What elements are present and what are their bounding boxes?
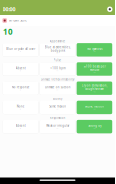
staticText: Absent [16,124,26,127]
staticText: 0 [20,108,21,110]
button[interactable]: Absent [3,120,38,133]
staticText: Absent [16,66,26,70]
button[interactable]: ≥100 beats per minute [77,62,112,76]
button[interactable]: Absent [3,62,38,76]
button[interactable]: No cyanosis [77,43,112,56]
staticText: Grimace (reflex irritability) [40,78,74,81]
staticText: APGAR Score [9,19,27,22]
staticText: <100 bpm [50,66,65,70]
staticText: Grimace on suction [44,85,70,89]
staticText: +1 [56,127,58,129]
staticText: 0 [20,70,21,72]
staticText: +1 [56,70,58,72]
staticText: +2 [93,108,95,110]
button[interactable]: <100 bpm [40,62,75,76]
staticText: 00:00 [2,6,15,13]
staticText: Active motion [85,105,104,108]
button[interactable]: Strong cry [77,120,112,133]
button[interactable]: Blue or pale all over [3,43,38,56]
staticText: +2 [93,51,95,52]
staticText: Activity [53,97,62,100]
staticText: Some flexion [49,105,66,108]
staticText: Respiration [49,116,65,120]
button[interactable]: Active motion [77,101,112,114]
button[interactable]: Blue at extremities, body pink [40,43,75,56]
staticText: +2 [93,91,95,93]
staticText: Weak or irregular [46,124,69,127]
button[interactable]: None [3,101,38,114]
staticText: Blue or pale all over [6,47,35,51]
staticText: Blue at extremities, body pink [44,45,70,52]
staticText: +2 [93,127,95,129]
staticText: No response [12,85,30,89]
button[interactable]: No response [3,81,38,95]
staticText: Cry on stimulation, cough/sneeze [81,84,107,91]
staticText: Strong cry [88,124,101,127]
staticText: ≥100 beats per minute [83,65,105,72]
staticText: 10 [3,26,13,37]
staticText: +1 [56,108,58,110]
button[interactable]: Cry on stimulation, cough/sneeze [77,81,112,95]
button[interactable]: Grimace on suction [40,81,75,95]
button[interactable]: Some flexion [40,101,75,114]
button[interactable]: Weak or irregular [40,120,75,133]
staticText: +1 [56,52,58,54]
staticText: +2 [93,72,95,73]
staticText: No cyanosis [87,47,102,51]
staticText: Appearance [49,39,65,43]
staticText: None [17,105,25,108]
staticText: Pulse [53,58,61,62]
